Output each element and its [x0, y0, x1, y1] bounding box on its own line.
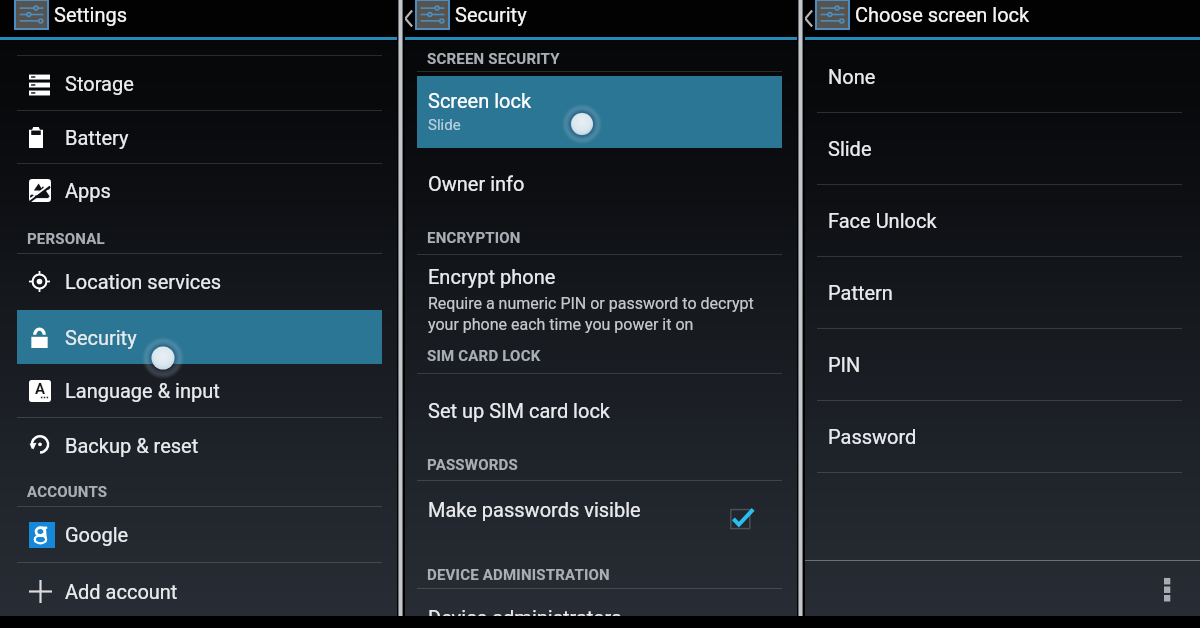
staticText: Apps	[65, 179, 111, 202]
staticText: DEVICE ADMINISTRATION	[427, 566, 610, 584]
button[interactable]: More options	[1145, 566, 1189, 612]
button[interactable]: Encrypt phone	[417, 255, 782, 349]
button[interactable]: Password	[817, 401, 1182, 472]
button[interactable]: None	[817, 41, 1182, 112]
staticText: PIN	[828, 353, 861, 376]
staticText: Password	[828, 425, 917, 448]
button[interactable]: Owner info	[417, 156, 782, 210]
staticText: SCREEN SECURITY	[427, 50, 560, 68]
staticText: Face Unlock	[828, 209, 937, 232]
staticText: PERSONAL	[27, 230, 105, 248]
staticText: Slide	[428, 116, 461, 134]
staticText: Encrypt phone	[428, 265, 556, 288]
staticText: Owner info	[428, 172, 525, 195]
staticText: Choose screen lock	[855, 3, 1030, 26]
staticText: Backup & reset	[65, 434, 199, 457]
button[interactable]: Face Unlock	[817, 185, 1182, 256]
button[interactable]: Security	[17, 310, 382, 364]
button[interactable]: PIN	[817, 329, 1182, 400]
button[interactable]: Google	[17, 507, 382, 562]
staticText: Set up SIM card lock	[428, 399, 610, 422]
button[interactable]: Location services	[17, 254, 382, 309]
staticText: ENCRYPTION	[427, 229, 521, 247]
button[interactable]: Slide	[817, 113, 1182, 184]
button[interactable]: Navigate up	[800, 0, 817, 37]
staticText: Google	[65, 523, 129, 546]
button[interactable]: Apps	[17, 164, 382, 216]
button[interactable]: Make passwords visible	[417, 480, 782, 538]
staticText: Storage	[65, 72, 134, 95]
button[interactable]: A	[17, 364, 382, 417]
button[interactable]: Storage	[17, 56, 382, 110]
staticText: Language & input	[65, 379, 220, 402]
staticText: SIM CARD LOCK	[427, 347, 541, 365]
staticText: Pattern	[828, 281, 893, 304]
button[interactable]: Navigate up	[400, 0, 417, 37]
staticText: Slide	[828, 137, 872, 160]
staticText: Battery	[65, 126, 129, 149]
staticText: None	[828, 65, 876, 88]
staticText: Security	[65, 326, 137, 349]
button[interactable]: Backup & reset	[17, 420, 382, 470]
staticText: PASSWORDS	[427, 456, 518, 474]
staticText: Require a numeric PIN or password to dec…	[428, 294, 754, 334]
staticText: Make passwords visible	[428, 498, 641, 521]
staticText: Add account	[65, 580, 178, 603]
staticText: Screen lock	[428, 89, 532, 112]
staticText: Location services	[65, 270, 222, 293]
staticText: Settings	[54, 3, 128, 26]
button[interactable]: Battery	[17, 111, 382, 163]
button[interactable]: Add account	[17, 566, 382, 616]
button[interactable]: Pattern	[817, 257, 1182, 328]
staticText: Device administrators	[428, 606, 622, 628]
button[interactable]: Set up SIM card lock	[417, 381, 782, 439]
button[interactable]: Screen lock	[417, 76, 782, 148]
staticText: ACCOUNTS	[27, 483, 108, 501]
staticText: Security	[455, 3, 527, 26]
staticText: A	[35, 380, 46, 398]
